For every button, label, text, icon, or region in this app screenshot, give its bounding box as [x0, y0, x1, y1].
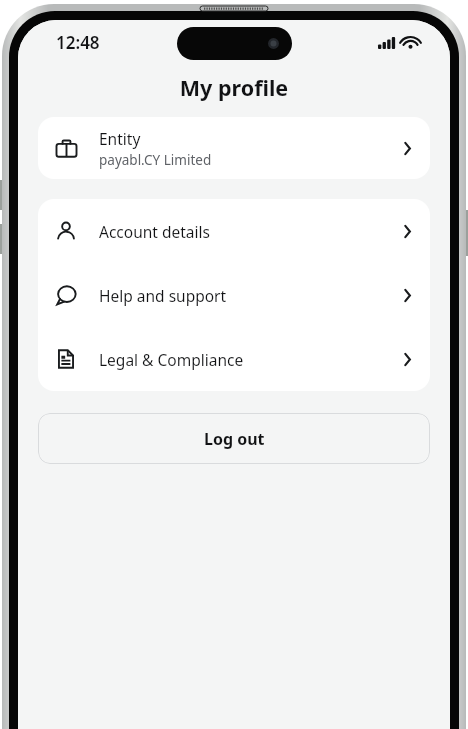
staticText: Account details — [99, 221, 210, 242]
button[interactable]: Legal & Compliance — [38, 327, 430, 391]
button[interactable]: Log out — [38, 413, 430, 464]
button[interactable]: Entity — [38, 117, 430, 179]
staticText: 12:48 — [56, 31, 100, 54]
staticText: Help and support — [99, 285, 227, 306]
staticText: payabl.CY Limited — [99, 151, 212, 169]
button[interactable]: Help and support — [38, 263, 430, 327]
staticText: My profile — [18, 73, 450, 102]
staticText: Log out — [204, 428, 265, 450]
button[interactable]: Account details — [38, 199, 430, 263]
staticText: Entity — [99, 128, 141, 149]
staticText: Legal & Compliance — [99, 349, 244, 370]
